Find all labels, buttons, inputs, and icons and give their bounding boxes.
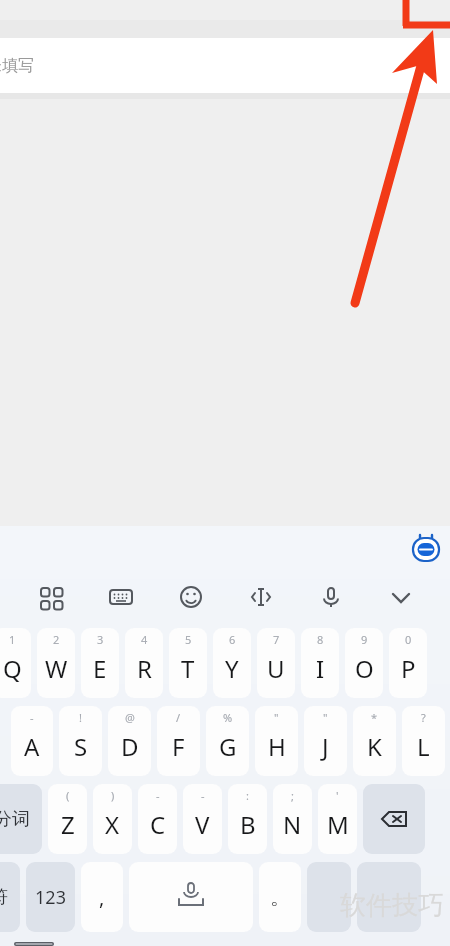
staticText: I xyxy=(316,652,325,685)
button[interactable]: - xyxy=(183,784,222,854)
staticText: W xyxy=(45,652,68,685)
button[interactable]: AI assistant xyxy=(409,532,443,566)
button[interactable]: 分词 xyxy=(0,784,42,854)
button[interactable]: Apps xyxy=(14,574,85,620)
staticText: 123 xyxy=(35,885,66,910)
staticText: S xyxy=(74,730,88,763)
staticText: R xyxy=(137,652,152,685)
button[interactable]: 符 xyxy=(0,862,20,932)
staticText: L xyxy=(417,730,430,763)
button[interactable]: 未填写 xyxy=(0,38,450,93)
button[interactable]: ) xyxy=(93,784,132,854)
button[interactable]: ( xyxy=(48,784,87,854)
button[interactable]: Space, voice input xyxy=(129,862,253,932)
staticText: M xyxy=(327,808,349,841)
staticText: U xyxy=(267,652,285,685)
staticText: E xyxy=(93,652,107,685)
staticText: 8 xyxy=(317,632,324,647)
staticText: - xyxy=(30,710,34,725)
button[interactable]: 1 xyxy=(0,628,31,698)
staticText: ; xyxy=(291,788,294,803)
staticText: 未填写 xyxy=(0,56,34,76)
staticText: P xyxy=(401,652,416,685)
button[interactable]: , xyxy=(81,862,123,932)
staticText: ( xyxy=(66,788,70,803)
button[interactable]: Hide keyboard xyxy=(366,574,436,620)
button[interactable]: ' xyxy=(318,784,357,854)
button[interactable]: 。 xyxy=(259,862,301,932)
staticText: A xyxy=(24,730,40,763)
staticText: O xyxy=(355,652,374,685)
button[interactable]: / xyxy=(157,706,200,776)
staticText: C xyxy=(150,808,166,841)
staticText: 符 xyxy=(0,886,8,909)
button[interactable]: 8 xyxy=(301,628,339,698)
staticText: 。 xyxy=(270,885,290,910)
button[interactable]: Keyboard xyxy=(85,574,156,620)
button[interactable]: 5 xyxy=(169,628,207,698)
staticText: 分词 xyxy=(0,808,30,831)
button[interactable]: 6 xyxy=(213,628,251,698)
staticText: 软件技巧 xyxy=(340,889,444,922)
staticText: H xyxy=(268,730,286,763)
button[interactable]: * xyxy=(353,706,396,776)
staticText: Z xyxy=(61,808,75,841)
staticText: B xyxy=(240,808,256,841)
staticText: K xyxy=(367,730,382,763)
staticText: X xyxy=(105,808,120,841)
staticText: J xyxy=(322,730,329,763)
staticText: 4 xyxy=(141,632,148,647)
button[interactable]: Voice input xyxy=(296,574,366,620)
button[interactable]: ! xyxy=(59,706,102,776)
button[interactable]: Backspace xyxy=(363,784,425,854)
button[interactable]: ; xyxy=(273,784,312,854)
staticText: 0 xyxy=(405,632,412,647)
staticText: 6 xyxy=(229,632,236,647)
button[interactable]: @ xyxy=(108,706,151,776)
button[interactable]: " xyxy=(304,706,347,776)
staticText: Y xyxy=(225,652,239,685)
staticText: 1 xyxy=(9,632,16,647)
staticText: * xyxy=(371,710,378,725)
staticText: " xyxy=(323,710,328,725)
staticText: 7 xyxy=(273,632,280,647)
button[interactable] xyxy=(357,862,421,932)
staticText: ) xyxy=(111,788,115,803)
button[interactable]: 0 xyxy=(389,628,427,698)
staticText: 3 xyxy=(97,632,104,647)
staticText: " xyxy=(274,710,279,725)
staticText: ? xyxy=(421,710,426,725)
button[interactable]: 3 xyxy=(81,628,119,698)
staticText: F xyxy=(172,730,185,763)
staticText: - xyxy=(156,788,160,803)
staticText: D xyxy=(121,730,139,763)
button[interactable] xyxy=(307,862,351,932)
staticText: / xyxy=(176,710,181,725)
staticText: 9 xyxy=(361,632,368,647)
staticText: ! xyxy=(79,710,82,725)
staticText: ' xyxy=(336,788,339,803)
staticText: 5 xyxy=(185,632,192,647)
button[interactable]: : xyxy=(228,784,267,854)
staticText: G xyxy=(219,730,237,763)
staticText: N xyxy=(283,808,302,841)
staticText: V xyxy=(195,808,210,841)
button[interactable]: Emoji xyxy=(156,574,226,620)
button[interactable]: - xyxy=(138,784,177,854)
button[interactable]: 2 xyxy=(37,628,75,698)
button[interactable]: - xyxy=(11,706,53,776)
button[interactable]: % xyxy=(206,706,249,776)
button[interactable]: ? xyxy=(402,706,445,776)
button[interactable]: 4 xyxy=(125,628,163,698)
button[interactable]: Move cursor xyxy=(226,574,296,620)
staticText: T xyxy=(181,652,195,685)
staticText: @ xyxy=(125,710,135,725)
button[interactable]: 7 xyxy=(257,628,295,698)
staticText: - xyxy=(201,788,205,803)
button[interactable]: " xyxy=(255,706,298,776)
staticText: 2 xyxy=(53,632,60,647)
button[interactable]: 123 xyxy=(26,862,75,932)
button[interactable]: 9 xyxy=(345,628,383,698)
staticText: Q xyxy=(3,652,22,685)
staticText: : xyxy=(246,788,249,803)
